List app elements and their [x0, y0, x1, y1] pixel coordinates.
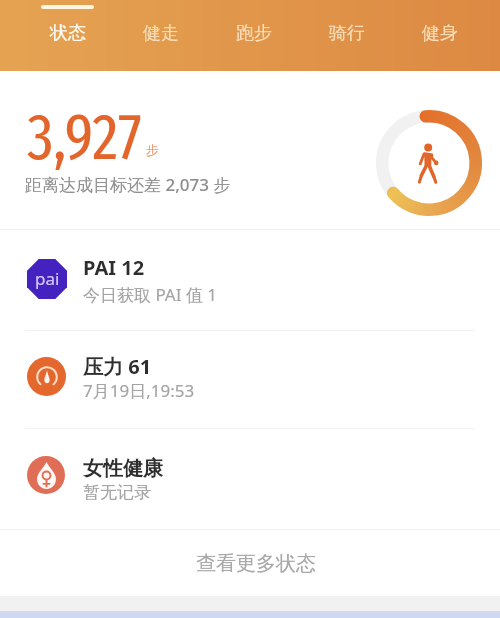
button[interactable]: 女性健康: [0, 429, 500, 530]
staticText: 压力 61: [83, 353, 152, 380]
staticText: 暂无记录: [83, 482, 151, 503]
button[interactable]: 查看更多状态: [0, 530, 500, 596]
staticText: 跑步: [236, 22, 272, 45]
staticText: 健走: [143, 22, 179, 45]
staticText: 女性健康: [83, 456, 163, 481]
staticText: 距离达成目标还差 2,073 步: [25, 173, 231, 196]
staticText: 今日获取 PAI 值 1: [83, 283, 218, 306]
staticText: 3,927: [27, 99, 142, 176]
staticText: 查看更多状态: [196, 551, 316, 576]
button[interactable]: 健身: [393, 0, 486, 71]
button[interactable]: pai: [0, 230, 500, 331]
button[interactable]: 健走: [114, 0, 207, 71]
staticText: pai: [35, 267, 60, 290]
staticText: PAI 12: [83, 254, 145, 281]
staticText: 7月19日,19:53: [83, 379, 195, 402]
other: Daily step goal progress: [376, 110, 482, 216]
button[interactable]: 压力 61: [0, 331, 500, 428]
button[interactable]: 状态: [21, 0, 114, 71]
staticText: 骑行: [329, 22, 365, 45]
staticText: 状态: [50, 22, 86, 45]
button[interactable]: 跑步: [207, 0, 300, 71]
button[interactable]: 骑行: [300, 0, 393, 71]
staticText: 健身: [422, 22, 458, 45]
staticText: 步: [146, 142, 159, 158]
